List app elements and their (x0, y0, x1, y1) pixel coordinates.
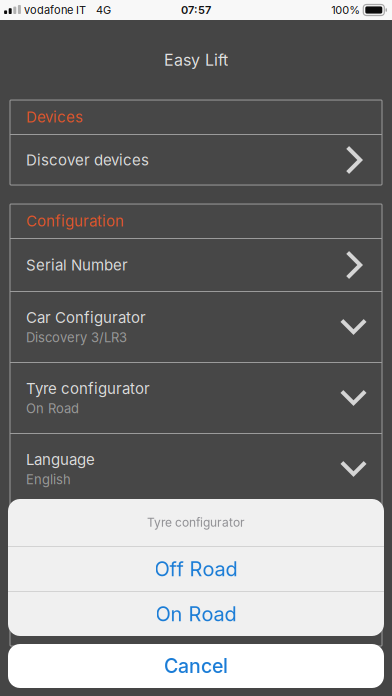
button[interactable]: Serial Number (10, 239, 382, 291)
button[interactable]: Off Road (8, 547, 384, 591)
staticText: 4G (96, 3, 111, 17)
button[interactable]: Calibration (10, 576, 382, 646)
staticText: Devices (26, 108, 83, 126)
staticText: On Road (155, 602, 236, 626)
staticText: Car Configurator (26, 309, 146, 327)
staticText: Discovery 3/LR3 (26, 330, 127, 345)
staticText: Easy Lift (164, 50, 228, 70)
button[interactable]: On Road (8, 592, 384, 636)
staticText: English (26, 472, 71, 487)
staticText: vodafone IT (24, 3, 86, 17)
staticText: Configuration (26, 212, 124, 230)
staticText: 07:57 (181, 3, 211, 17)
staticText: Cancel (164, 654, 228, 678)
staticText: Metric (26, 543, 65, 558)
staticText: Discover devices (26, 151, 149, 169)
staticText: Tyre configurator (147, 515, 245, 530)
button[interactable]: Car Configurator (10, 292, 382, 362)
staticText: Off Road (154, 557, 237, 581)
staticText: Serial Number (26, 256, 128, 274)
button[interactable]: Tyre configurator (10, 363, 382, 433)
staticText: 100% (331, 3, 360, 17)
button[interactable]: Language (10, 434, 382, 504)
button[interactable]: Cancel (8, 644, 384, 688)
button[interactable]: Units (10, 505, 382, 575)
staticText: Tyre configurator (26, 380, 150, 398)
staticText: On Road (26, 401, 79, 416)
button[interactable]: Discover devices (10, 135, 382, 185)
staticText: Language (26, 451, 95, 469)
